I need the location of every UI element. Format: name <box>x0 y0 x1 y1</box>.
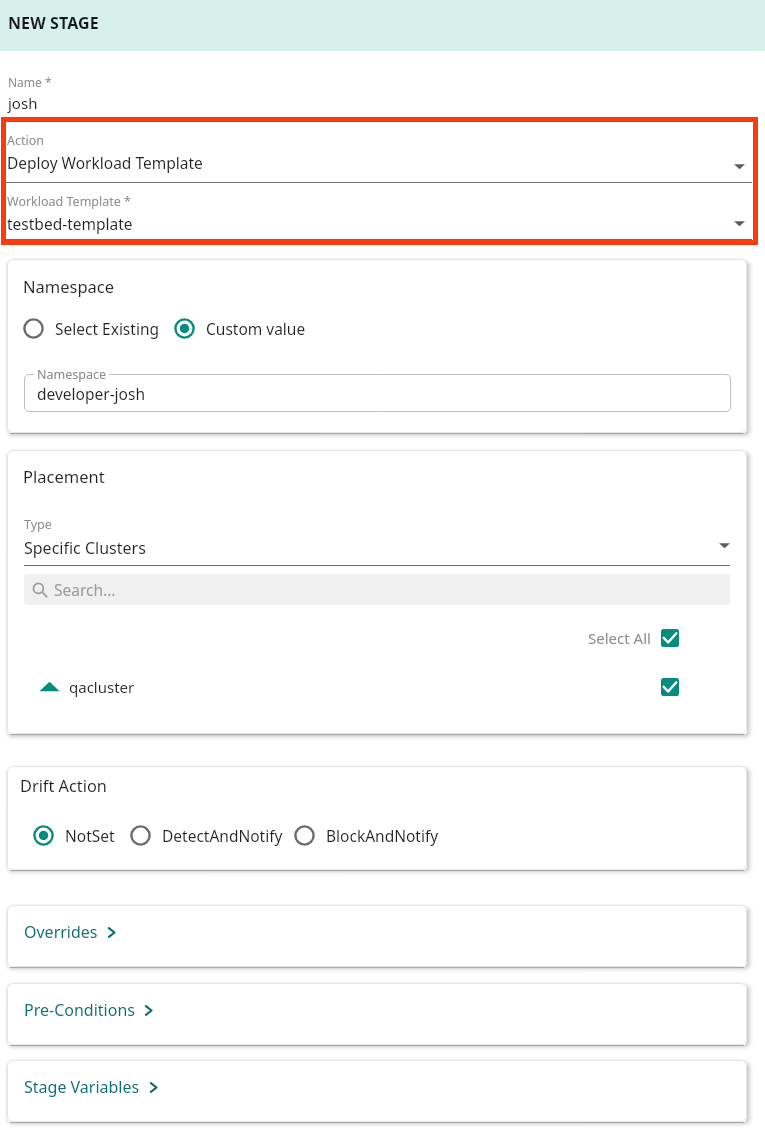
staticText: Specific Clusters <box>24 537 146 559</box>
button[interactable]: Checkbox, checked <box>661 678 679 696</box>
button[interactable]: NotSet <box>33 825 115 846</box>
button[interactable]: BlockAndNotify <box>294 825 439 846</box>
staticText: Select Existing <box>55 318 160 339</box>
staticText: josh <box>8 93 38 113</box>
staticText: Deploy Workload Template <box>7 152 203 173</box>
staticText: Custom value <box>206 318 306 339</box>
button[interactable]: Collapse qacluster <box>39 676 60 697</box>
staticText: testbed-template <box>7 213 133 234</box>
staticText: Pre-Conditions <box>24 999 135 1021</box>
staticText: Stage Variables <box>24 1076 140 1098</box>
staticText: qacluster <box>69 677 135 697</box>
button[interactable]: Stage Variables <box>7 1060 747 1122</box>
staticText: Select All <box>588 628 651 648</box>
button[interactable]: Workload Template * <box>6 193 752 243</box>
staticText: Search... <box>54 579 116 600</box>
button[interactable]: Overrides <box>7 905 747 967</box>
button[interactable]: Checkbox, checked <box>661 629 679 647</box>
button[interactable]: Action <box>6 132 752 185</box>
staticText: Name * <box>8 74 52 90</box>
other: Open Type dropdown <box>719 540 730 551</box>
staticText: developer-josh <box>37 383 146 404</box>
staticText: Action <box>7 132 45 149</box>
staticText: Workload Template * <box>7 193 131 210</box>
staticText: Namespace <box>37 366 106 383</box>
staticText: Overrides <box>24 921 98 943</box>
staticText: DetectAndNotify <box>162 825 283 846</box>
button[interactable]: DetectAndNotify <box>130 825 283 846</box>
staticText: Type <box>24 516 52 533</box>
other: Open Action dropdown <box>734 161 745 172</box>
button[interactable]: Pre-Conditions <box>7 983 747 1045</box>
button[interactable]: Select Existing <box>23 318 160 339</box>
staticText: BlockAndNotify <box>326 825 439 846</box>
button[interactable]: Type <box>24 516 730 538</box>
staticText: Placement <box>23 465 105 487</box>
staticText: Namespace <box>23 275 115 297</box>
other: Open Workload Template dropdown <box>734 218 745 229</box>
staticText: NotSet <box>65 825 115 846</box>
button[interactable]: Search... <box>24 574 730 605</box>
staticText: Drift Action <box>20 775 107 797</box>
staticText: NEW STAGE <box>8 12 99 34</box>
button[interactable]: Custom value <box>174 318 306 339</box>
